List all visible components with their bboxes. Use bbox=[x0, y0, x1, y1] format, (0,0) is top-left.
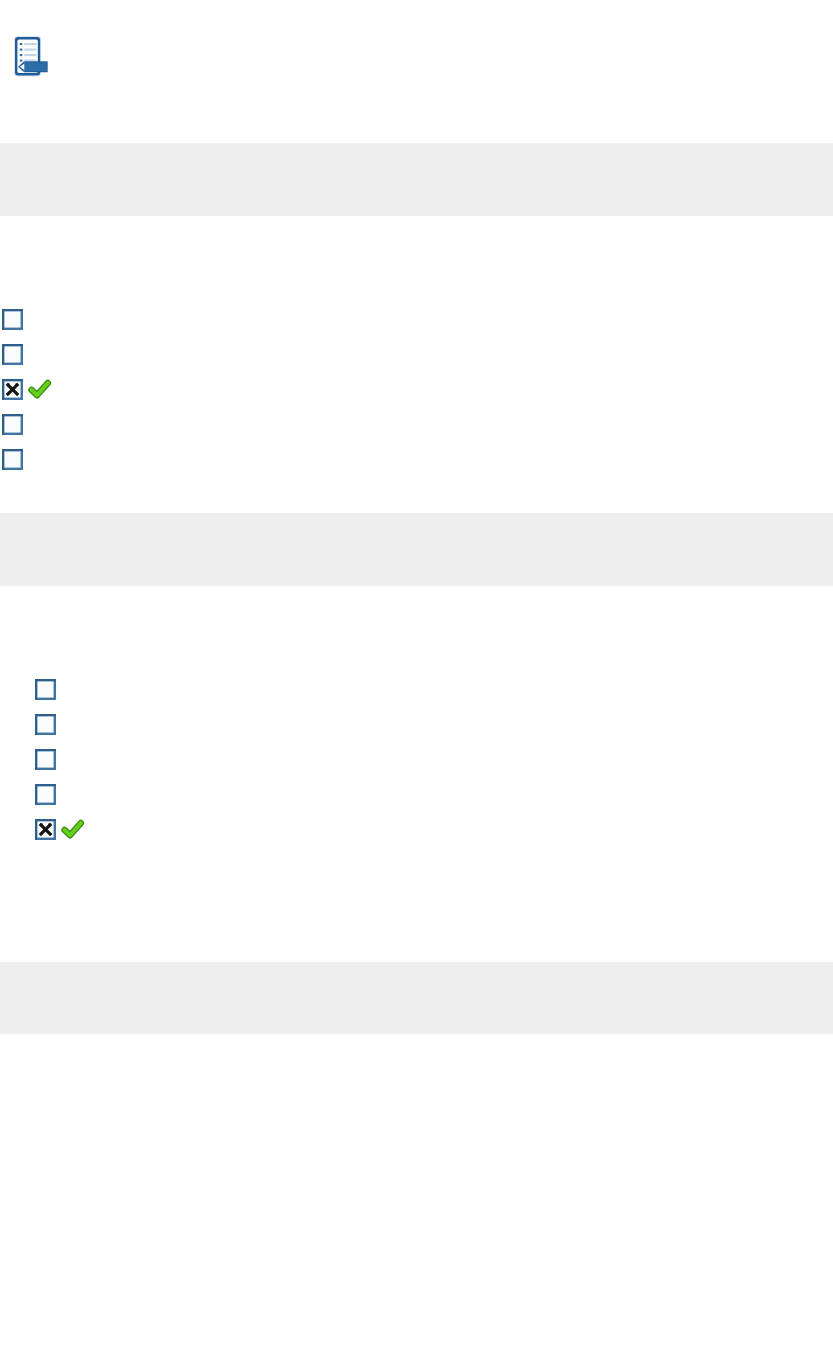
button[interactable]: Choice 2 bbox=[0, 707, 833, 742]
other: Option 5 bbox=[2, 449, 23, 470]
other: Choice 3 bbox=[35, 749, 56, 770]
other: Option 2 bbox=[2, 344, 23, 365]
other: Option 1 bbox=[2, 309, 23, 330]
button[interactable]: Choice 1 bbox=[0, 672, 833, 707]
other: Option 4 bbox=[2, 414, 23, 435]
other: Choice 2 bbox=[35, 714, 56, 735]
other: Choice 1 bbox=[35, 679, 56, 700]
button[interactable]: Option 5 bbox=[0, 442, 833, 477]
button[interactable]: Choice 4 bbox=[0, 777, 833, 812]
button[interactable]: Option 2 bbox=[0, 337, 833, 372]
other: Choice 5 bbox=[35, 819, 56, 840]
other: Option 3 bbox=[2, 379, 23, 400]
button[interactable]: Option 3 bbox=[0, 372, 833, 407]
other: Choice 4 bbox=[35, 784, 56, 805]
button[interactable]: Option 4 bbox=[0, 407, 833, 442]
button[interactable]: Choice 5 bbox=[0, 812, 833, 847]
button[interactable]: Form document bbox=[14, 36, 48, 80]
button[interactable]: Option 1 bbox=[0, 302, 833, 337]
other: Selected bbox=[63, 820, 82, 839]
other: Selected bbox=[30, 380, 49, 399]
button[interactable]: Choice 3 bbox=[0, 742, 833, 777]
